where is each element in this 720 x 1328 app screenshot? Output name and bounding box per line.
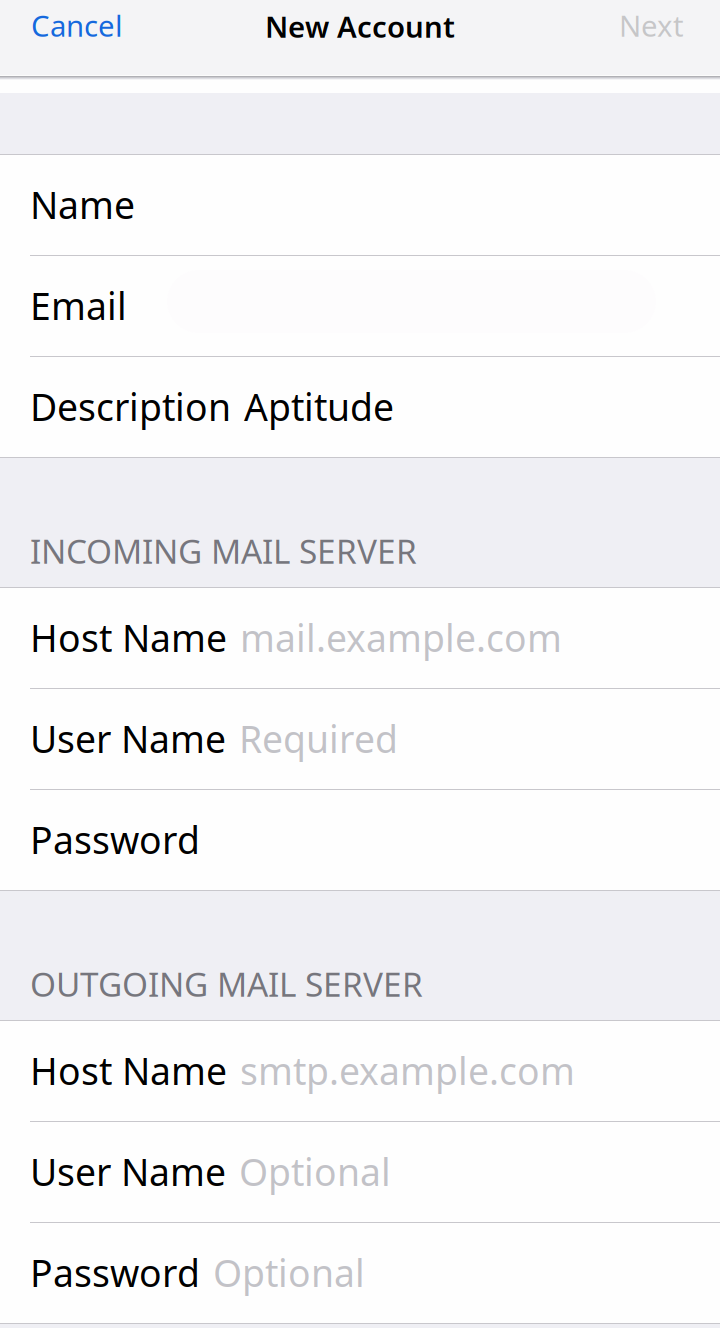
button[interactable]: Name — [0, 154, 720, 255]
button[interactable]: Description — [0, 356, 720, 457]
button[interactable]: Next — [605, 0, 720, 53]
button[interactable]: User Name — [0, 1121, 720, 1222]
staticText: Host Name — [30, 613, 227, 662]
staticText: Name — [30, 180, 135, 229]
staticText: Optional — [239, 1147, 391, 1196]
staticText: Cancel — [31, 6, 123, 45]
staticText: Optional — [213, 1248, 365, 1297]
button[interactable]: Password — [0, 789, 720, 890]
staticText: User Name — [30, 714, 226, 763]
staticText: mail.example.com — [240, 613, 562, 662]
staticText: OUTGOING MAIL SERVER — [30, 962, 423, 1006]
button[interactable]: Email — [0, 255, 720, 356]
staticText: Host Name — [30, 1046, 227, 1095]
staticText: New Account — [265, 7, 455, 46]
staticText: INCOMING MAIL SERVER — [30, 529, 417, 573]
button[interactable]: Cancel — [0, 0, 137, 53]
button[interactable]: Host Name — [0, 1020, 720, 1121]
staticText: Password — [30, 815, 200, 864]
staticText: Description — [30, 382, 231, 431]
staticText: User Name — [30, 1147, 226, 1196]
button[interactable]: User Name — [0, 688, 720, 789]
staticText: Email — [30, 281, 127, 330]
staticText: smtp.example.com — [240, 1046, 575, 1095]
staticText: Required — [239, 714, 398, 763]
button[interactable]: Host Name — [0, 587, 720, 688]
staticText: Next — [619, 6, 684, 45]
staticText: Aptitude — [244, 382, 394, 431]
staticText: Password — [30, 1248, 200, 1297]
button[interactable]: Password — [0, 1222, 720, 1323]
